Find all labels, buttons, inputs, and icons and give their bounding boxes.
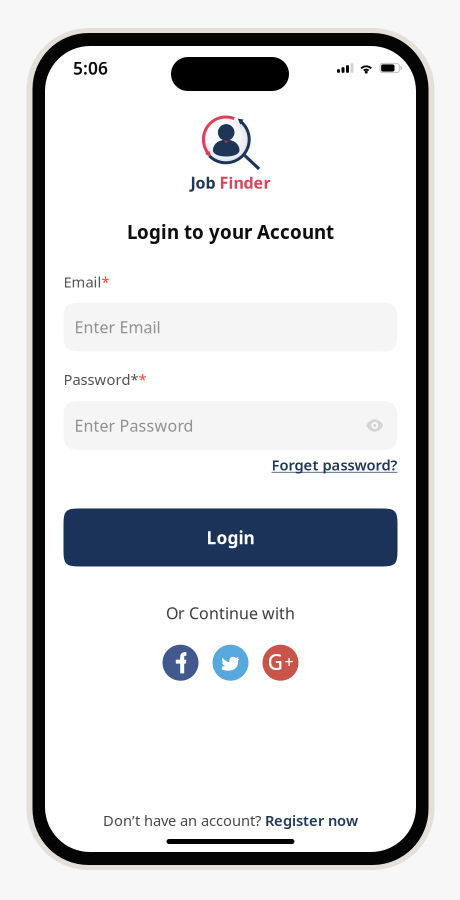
staticText: *: [101, 272, 109, 291]
button[interactable]: Continue with Twitter: [212, 645, 248, 681]
staticText: 5:06: [73, 56, 108, 79]
staticText: Job: [190, 172, 215, 193]
staticText: Login: [206, 526, 254, 549]
staticText: Or Continue with: [166, 602, 295, 624]
staticText: +: [284, 651, 293, 672]
staticText: Forget password?: [271, 455, 397, 474]
staticText: *: [138, 369, 146, 389]
button[interactable]: Forget password?: [271, 455, 397, 474]
staticText: Finder: [215, 172, 270, 193]
staticText: Register now: [265, 810, 358, 830]
button[interactable]: Continue with Facebook: [162, 645, 198, 681]
staticText: Login to your Account: [127, 219, 334, 244]
button[interactable]: Login: [63, 508, 397, 566]
staticText: *: [130, 369, 138, 389]
staticText: Password: [63, 369, 130, 389]
staticText: Email: [63, 272, 101, 291]
staticText: Don’t have an account?: [103, 810, 265, 830]
staticText: G: [267, 648, 283, 676]
staticText: Enter Email: [74, 316, 160, 338]
button[interactable]: Continue with Google: [262, 645, 298, 681]
button[interactable]: Register now: [265, 810, 358, 830]
staticText: Enter Password: [74, 415, 193, 436]
